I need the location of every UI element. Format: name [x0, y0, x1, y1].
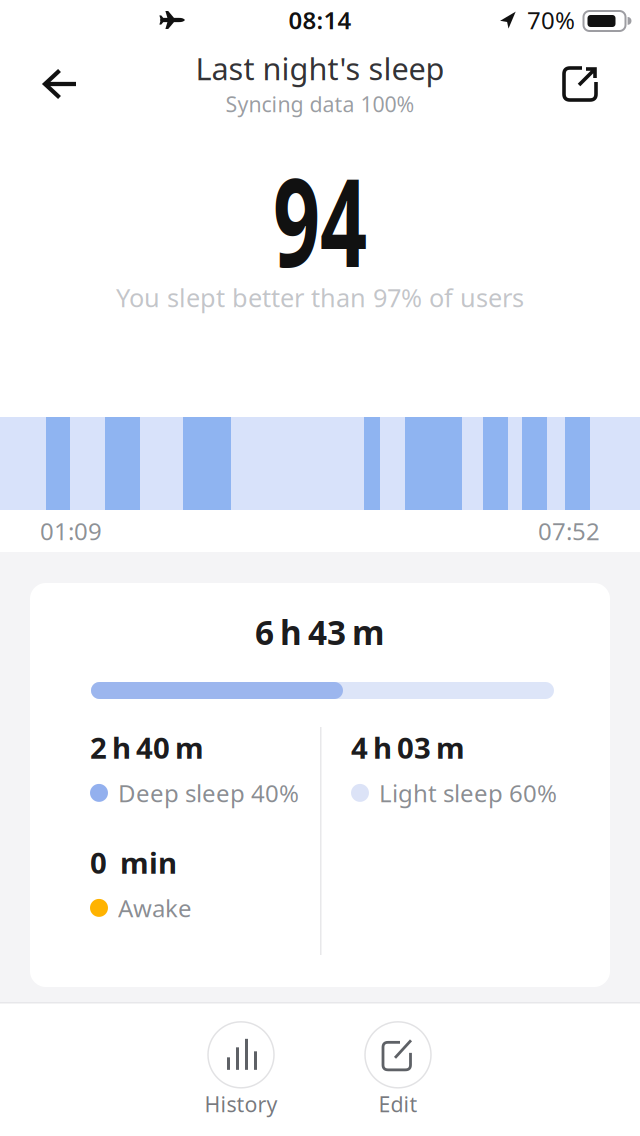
- button[interactable]: Edit: [365, 1022, 431, 1118]
- staticText: 4 h 03 m: [351, 728, 465, 767]
- staticText: 0 min: [90, 843, 177, 882]
- staticText: 01:09: [40, 515, 102, 547]
- button[interactable]: Share: [552, 55, 608, 113]
- staticText: Light sleep 60%: [379, 777, 557, 809]
- staticText: Awake: [118, 892, 192, 924]
- staticText: 2 h 40 m: [90, 728, 204, 767]
- staticText: Last night's sleep: [195, 48, 444, 89]
- staticText: History: [204, 1090, 277, 1118]
- staticText: Deep sleep 40%: [118, 777, 299, 809]
- staticText: 6 h 43 m: [255, 610, 385, 654]
- staticText: Edit: [378, 1090, 417, 1118]
- staticText: 70%: [527, 4, 575, 36]
- staticText: You slept better than 97% of users: [116, 281, 524, 314]
- button[interactable]: History: [204, 1022, 277, 1118]
- button[interactable]: Back: [30, 55, 90, 113]
- staticText: 07:52: [538, 515, 600, 547]
- staticText: 94: [251, 139, 389, 300]
- staticText: Syncing data 100%: [225, 90, 414, 118]
- staticText: 08:14: [288, 4, 351, 36]
